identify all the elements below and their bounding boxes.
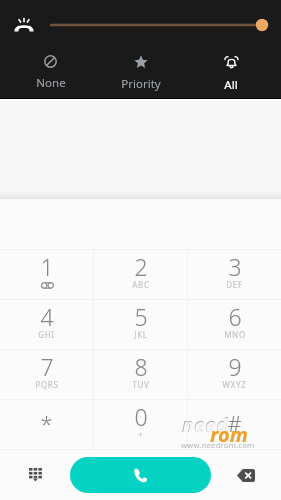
staticText: 6	[228, 301, 242, 332]
staticText: 7	[40, 351, 54, 382]
button[interactable]: 8	[94, 350, 187, 399]
button[interactable]: 7	[0, 350, 93, 399]
staticText: 9	[228, 351, 242, 382]
button[interactable]: 2	[94, 250, 187, 299]
staticText: +	[138, 429, 144, 440]
button[interactable]: *	[0, 400, 93, 449]
button[interactable]: 5	[94, 300, 187, 349]
staticText: #	[227, 408, 242, 438]
staticText: None	[36, 75, 66, 91]
staticText: 5	[134, 301, 148, 332]
staticText: JKL	[134, 329, 148, 340]
staticText: rom	[210, 421, 248, 448]
button[interactable]: Hide keypad	[13, 453, 57, 497]
staticText: 2	[134, 251, 148, 282]
button[interactable]: 6	[188, 300, 281, 349]
button[interactable]: Call	[70, 457, 211, 493]
button[interactable]: 9	[188, 350, 281, 399]
staticText: MNO	[224, 329, 246, 340]
staticText: TUV	[132, 379, 150, 390]
staticText: DEF	[226, 279, 243, 290]
staticText: 3	[228, 251, 242, 282]
staticText: need	[183, 413, 229, 437]
button[interactable]: Ringer volume	[8, 9, 40, 41]
button[interactable]: Backspace	[224, 453, 268, 497]
button[interactable]: 3	[188, 250, 281, 299]
staticText: need	[182, 412, 228, 438]
staticText: Priority	[121, 76, 161, 92]
staticText: 8	[134, 351, 148, 382]
staticText: *	[40, 408, 53, 438]
button[interactable]: #	[188, 400, 281, 449]
staticText: www.needrom.com	[181, 440, 255, 450]
staticText: GHI	[38, 329, 55, 340]
staticText: 0	[134, 401, 148, 432]
staticText: All	[224, 77, 238, 93]
button[interactable]: None	[5, 50, 96, 98]
staticText: WXYZ	[222, 379, 247, 390]
staticText: 4	[40, 301, 54, 332]
button[interactable]: 1	[0, 250, 93, 299]
staticText: 1	[40, 251, 54, 282]
button[interactable]: 4	[0, 300, 93, 349]
staticText: PQRS	[35, 379, 59, 390]
button[interactable]: 0	[94, 400, 187, 449]
button[interactable]: All	[186, 50, 276, 98]
staticText: ABC	[132, 279, 150, 290]
button[interactable]: Priority	[96, 50, 186, 98]
